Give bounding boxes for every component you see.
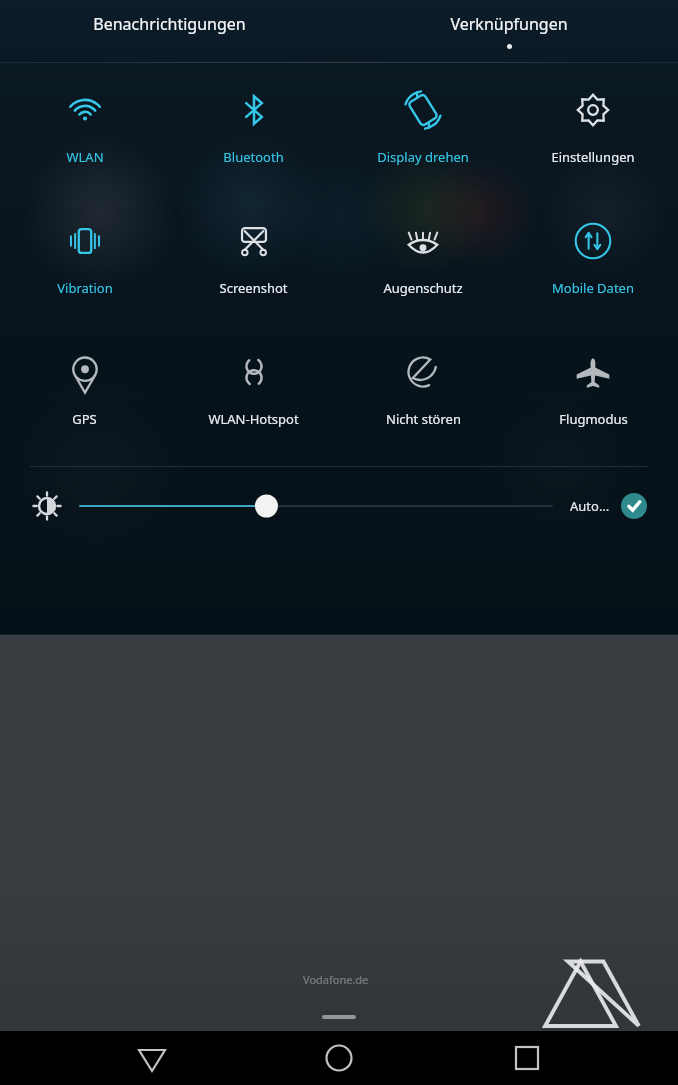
button[interactable]: Auto brightness [620,492,648,520]
staticText: Bluetooth [223,148,284,166]
other: GPS [62,349,108,395]
staticText: Augenschutz [383,279,463,297]
button[interactable]: Vibration [0,218,169,297]
button[interactable]: Benachrichtigungen [0,0,339,62]
other: Mobile Daten [570,218,616,264]
other: Nicht stören [400,349,446,395]
staticText: Benachrichtigungen [93,13,246,35]
button[interactable]: Einstellungen [508,87,678,166]
button[interactable]: Flugmodus [508,349,678,428]
other: Vibration [62,218,108,264]
staticText: Mobile Daten [552,279,634,297]
button[interactable]: Verknüpfungen [339,0,678,62]
staticText: Flugmodus [559,410,628,428]
other: Bluetooth [231,87,277,133]
button[interactable]: GPS [0,349,169,428]
button[interactable]: Nicht stören [338,349,508,428]
staticText: Einstellungen [551,148,635,166]
other: Augenschutz [400,218,446,264]
button[interactable] [80,489,552,523]
other: Einstellungen [570,87,616,133]
button[interactable]: Recents [491,1031,563,1085]
button[interactable]: Back [116,1031,188,1085]
button[interactable]: WLAN [0,87,169,166]
other: Brightness [30,489,64,523]
button[interactable]: Augenschutz [338,218,508,297]
other: WLAN [62,87,108,133]
other: WLAN-Hotspot [231,349,277,395]
staticText: Vibration [57,279,113,297]
staticText: Vodafone.de [303,972,369,987]
other: Screenshot [231,218,277,264]
button[interactable]: Bluetooth [169,87,338,166]
staticText: Screenshot [219,279,288,297]
staticText: Nicht stören [386,410,461,428]
staticText: WLAN-Hotspot [208,410,299,428]
button[interactable]: Home [303,1031,375,1085]
staticText: Display drehen [377,148,469,166]
staticText: Auto… [570,497,610,515]
button[interactable]: Display drehen [338,87,508,166]
other: Display drehen [400,87,446,133]
staticText: WLAN [66,148,104,166]
other: Flugmodus [570,349,616,395]
button[interactable]: Mobile Daten [508,218,678,297]
button[interactable]: Screenshot [169,218,338,297]
button[interactable]: WLAN-Hotspot [169,349,338,428]
staticText: GPS [72,410,97,428]
staticText: Verknüpfungen [450,13,568,35]
